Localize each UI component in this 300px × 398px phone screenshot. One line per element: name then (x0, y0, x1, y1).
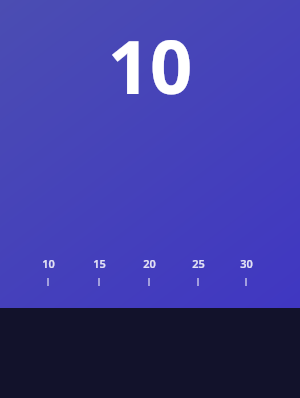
staticText: 15 (93, 256, 106, 271)
staticText: 25 (192, 256, 205, 271)
button[interactable]: Scale mark 25 (178, 256, 218, 288)
button[interactable]: 10 (0, 0, 300, 308)
button[interactable]: Scale mark 30 (226, 256, 266, 288)
staticText: 20 (143, 256, 156, 271)
staticText: 10 (0, 15, 300, 116)
button[interactable]: Scale mark 20 (129, 256, 169, 288)
button[interactable]: Scale mark 10 (28, 256, 68, 288)
button[interactable]: Scale mark 15 (79, 256, 119, 288)
staticText: 10 (42, 256, 55, 271)
staticText: 30 (240, 256, 253, 271)
